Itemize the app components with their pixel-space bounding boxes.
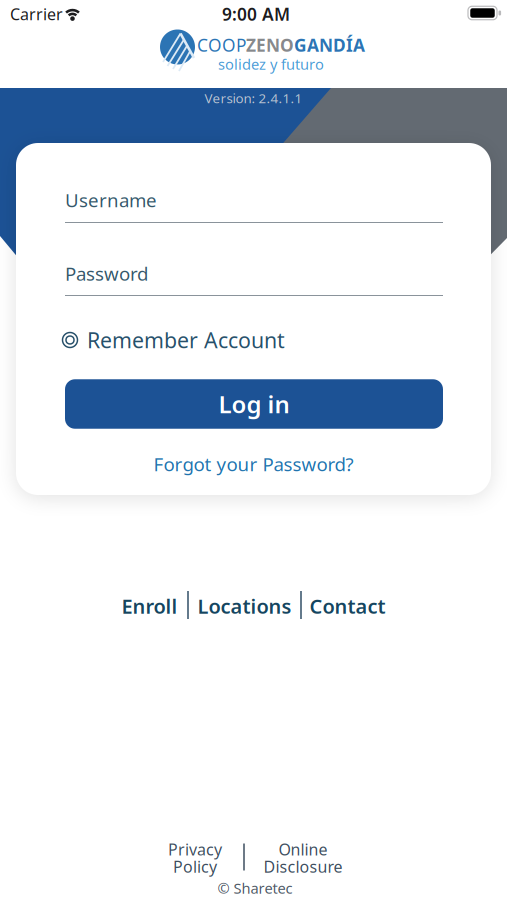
staticText: Locations bbox=[197, 593, 291, 619]
button[interactable]: Privacy bbox=[168, 839, 222, 877]
button[interactable]: Locations bbox=[197, 593, 291, 619]
button[interactable]: Online bbox=[263, 839, 342, 877]
staticText: Forgot your Password? bbox=[153, 452, 353, 476]
button[interactable]: Contact bbox=[309, 593, 385, 619]
staticText: GANDÍA bbox=[294, 33, 365, 56]
staticText: Carrier bbox=[10, 3, 63, 25]
button[interactable]: Forgot your Password? bbox=[153, 452, 353, 476]
button[interactable]: Password bbox=[65, 250, 443, 296]
button[interactable]: Remember Account bbox=[62, 326, 285, 354]
staticText: ZENO bbox=[246, 33, 294, 56]
staticText: COOP bbox=[197, 33, 246, 56]
staticText: Contact bbox=[309, 593, 385, 619]
staticText: © Sharetec bbox=[217, 878, 292, 898]
staticText: Privacy bbox=[168, 839, 222, 860]
staticText: Log in bbox=[218, 388, 289, 420]
staticText: Online bbox=[278, 839, 327, 860]
staticText: Disclosure bbox=[263, 856, 342, 877]
staticText: Enroll bbox=[121, 593, 177, 619]
button[interactable]: Log in bbox=[65, 379, 443, 429]
staticText: 9:00 AM bbox=[222, 2, 290, 25]
staticText: Password bbox=[65, 261, 148, 286]
button[interactable]: Username bbox=[65, 177, 443, 223]
staticText: Policy bbox=[173, 856, 217, 877]
staticText: Remember Account bbox=[87, 326, 285, 354]
button[interactable]: Enroll bbox=[121, 593, 177, 619]
staticText: Username bbox=[65, 188, 157, 212]
staticText: Version: 2.4.1.1 bbox=[204, 89, 302, 107]
staticText: solidez y futuro bbox=[218, 54, 324, 74]
